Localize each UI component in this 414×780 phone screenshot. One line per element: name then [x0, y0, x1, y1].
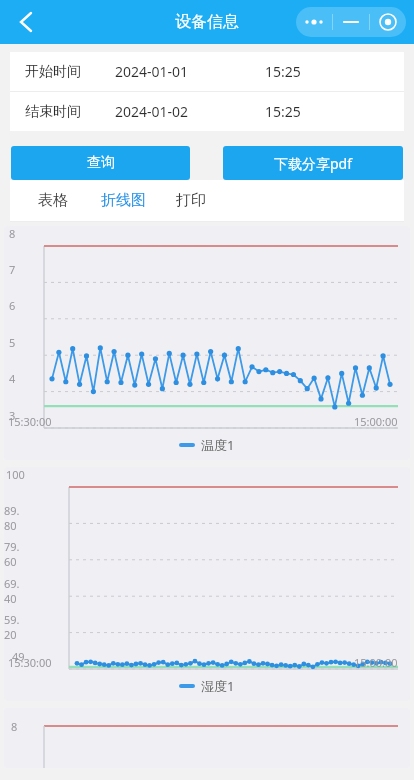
staticText: 下载分享pdf	[274, 154, 353, 173]
button[interactable]: 折线图	[101, 191, 146, 210]
staticText: 5	[9, 335, 16, 350]
button[interactable]: Close	[370, 11, 406, 33]
staticText: 2024-01-01	[115, 62, 189, 81]
staticText: 设备信息	[175, 12, 239, 32]
staticText: 15:25	[265, 102, 301, 121]
staticText: 结束时间	[25, 103, 81, 121]
button[interactable]: Minimize	[333, 16, 369, 28]
staticText: 69.40	[4, 576, 25, 606]
staticText: 温度1	[201, 436, 235, 454]
staticText: 湿度1	[201, 677, 235, 695]
staticText: 79.60	[4, 539, 25, 569]
staticText: 开始时间	[25, 63, 81, 81]
button[interactable]: 结束时间	[10, 92, 404, 131]
staticText: 6	[9, 298, 16, 313]
button[interactable]: More	[296, 15, 332, 29]
staticText: 查询	[87, 154, 115, 172]
staticText: 89.80	[4, 503, 25, 533]
staticText: 8	[9, 226, 16, 241]
staticText: 8	[11, 719, 18, 734]
staticText: 4	[9, 371, 16, 386]
staticText: 表格	[38, 191, 68, 210]
staticText: 100	[6, 467, 25, 482]
button[interactable]: Back	[6, 2, 46, 42]
button[interactable]: 打印	[176, 191, 206, 210]
staticText: 59.20	[4, 612, 25, 642]
staticText: 15:00:00	[354, 655, 398, 670]
staticText: 3	[9, 408, 16, 423]
staticText: 15:00:00	[354, 414, 398, 429]
staticText: 7	[9, 262, 16, 277]
staticText: 15:25	[265, 62, 301, 81]
staticText: 打印	[176, 191, 206, 210]
button[interactable]: 下载分享pdf	[223, 146, 403, 180]
staticText: 49	[12, 649, 25, 664]
button[interactable]: 开始时间	[10, 52, 404, 91]
button[interactable]: 表格	[38, 191, 68, 210]
staticText: 折线图	[101, 191, 146, 210]
staticText: 2024-01-02	[115, 102, 189, 121]
staticText: 15:30:00	[8, 655, 52, 670]
staticText: 15:30:00	[8, 414, 52, 429]
button[interactable]: 查询	[11, 146, 190, 180]
